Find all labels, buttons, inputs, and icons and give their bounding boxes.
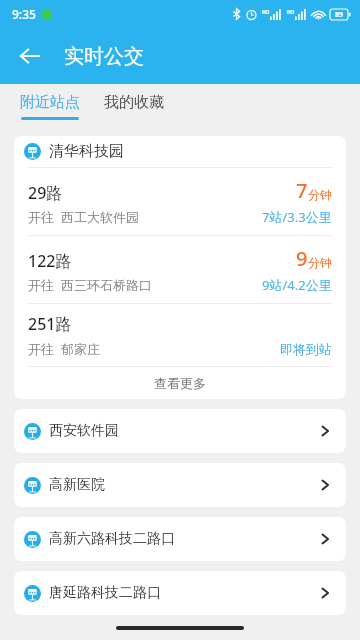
- staticText: 29路: [28, 182, 63, 204]
- button[interactable]: 高新医院: [14, 463, 346, 507]
- button[interactable]: 251路: [14, 304, 346, 366]
- staticText: 251路: [28, 313, 72, 335]
- button[interactable]: 唐延路科技二路口: [14, 571, 346, 615]
- staticText: 开往: [28, 277, 54, 293]
- staticText: 分钟: [308, 187, 332, 202]
- button[interactable]: 高新六路科技二路口: [14, 517, 346, 561]
- button[interactable]: 清华科技园: [14, 136, 346, 167]
- staticText: 开往: [28, 341, 54, 357]
- staticText: 122路: [28, 250, 72, 272]
- staticText: 7站/3.3公里: [262, 208, 332, 226]
- staticText: 即将到站: [280, 341, 332, 357]
- staticText: 9站/4.2公里: [262, 276, 332, 294]
- button[interactable]: 附近站点: [20, 93, 80, 120]
- staticText: 我的收藏: [104, 93, 164, 112]
- button[interactable]: 我的收藏: [104, 97, 164, 116]
- staticText: 西工大软件园: [61, 209, 139, 225]
- button[interactable]: 查看更多: [14, 367, 346, 399]
- button[interactable]: 西安软件园: [14, 409, 346, 453]
- staticText: 分钟: [308, 255, 332, 270]
- staticText: 9: [296, 245, 308, 272]
- staticText: HD: [287, 9, 295, 16]
- staticText: 西安软件园: [49, 422, 119, 440]
- staticText: 唐延路科技二路口: [49, 584, 161, 602]
- staticText: 查看更多: [154, 375, 206, 391]
- staticText: 高新六路科技二路口: [49, 530, 175, 548]
- staticText: 7: [296, 177, 308, 204]
- button[interactable]: Back: [8, 34, 52, 78]
- staticText: 9:35: [12, 6, 36, 22]
- staticText: 89: [335, 10, 344, 20]
- button[interactable]: 122路: [14, 236, 346, 303]
- staticText: 郁家庄: [61, 341, 100, 357]
- staticText: 实时公交: [64, 44, 144, 69]
- staticText: 西三环石桥路口: [61, 277, 152, 293]
- staticText: 附近站点: [20, 93, 80, 112]
- staticText: 开往: [28, 209, 54, 225]
- staticText: 清华科技园: [49, 142, 124, 161]
- button[interactable]: 29路: [14, 168, 346, 235]
- staticText: 高新医院: [49, 476, 105, 494]
- staticText: HD: [262, 9, 270, 16]
